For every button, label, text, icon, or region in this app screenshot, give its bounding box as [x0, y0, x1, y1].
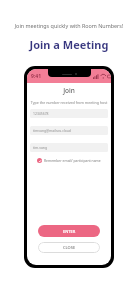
staticText: timvang@mailsos.cloud — [33, 128, 71, 133]
staticText: Join meetings quickly with Room Numbers! — [0, 22, 138, 29]
staticText: Join a Meeting — [0, 37, 138, 52]
staticText: tim.vang — [33, 145, 47, 150]
button[interactable]: tim.vang — [30, 143, 108, 152]
button[interactable]: CLOSE — [38, 242, 100, 253]
staticText: Remember email/ participant name — [44, 158, 101, 163]
button[interactable]: Remember email/ participant name — [30, 158, 108, 163]
button[interactable]: 12345678 — [30, 109, 108, 118]
staticText: 9:41 — [31, 73, 41, 80]
staticText: Join — [30, 86, 108, 95]
staticText: ENTER — [63, 229, 76, 234]
staticText: Type the number received from meeting ho… — [30, 100, 108, 105]
staticText: CLOSE — [63, 245, 76, 250]
staticText: 12345678 — [33, 111, 49, 116]
button[interactable]: ENTER — [38, 225, 100, 237]
button[interactable]: timvang@mailsos.cloud — [30, 126, 108, 135]
